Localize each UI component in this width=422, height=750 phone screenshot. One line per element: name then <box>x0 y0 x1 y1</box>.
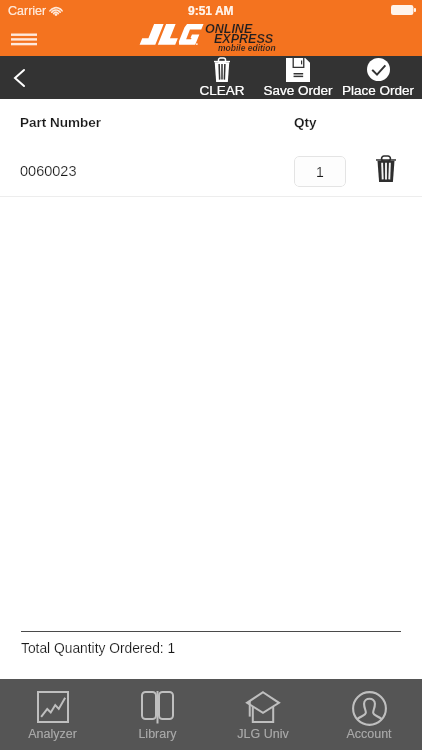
button[interactable]: 0060023 <box>0 146 422 196</box>
staticText: Carrier <box>8 4 47 18</box>
button[interactable]: JLG Univ <box>210 679 316 750</box>
staticText: 0060023 <box>20 163 77 179</box>
staticText: Total Quantity Ordered: 1 <box>21 641 176 656</box>
button[interactable]: Menu <box>4 23 44 51</box>
staticText: Save Order <box>262 83 334 98</box>
staticText: EXPRESS <box>214 32 274 46</box>
button[interactable]: Place Order <box>334 56 422 99</box>
button[interactable]: Save Order <box>262 56 334 99</box>
button[interactable]: Analyzer <box>0 679 105 750</box>
button[interactable]: Back <box>0 56 44 99</box>
staticText: Analyzer <box>0 727 105 741</box>
button[interactable]: Delete item <box>368 151 404 187</box>
staticText: ONLINE <box>205 22 253 36</box>
staticText: Library <box>105 727 210 741</box>
staticText: Place Order <box>334 83 422 98</box>
staticText: Account <box>316 727 422 741</box>
button[interactable]: 1 <box>294 156 346 187</box>
staticText: 9:51 AM <box>188 4 234 17</box>
button[interactable]: CLEAR <box>182 56 262 99</box>
staticText: Part Number <box>20 115 102 130</box>
button[interactable]: Library <box>105 679 210 750</box>
staticText: CLEAR <box>182 83 262 98</box>
button[interactable]: Account <box>316 679 422 750</box>
staticText: 1 <box>316 164 324 180</box>
staticText: JLG Univ <box>210 727 316 741</box>
staticText: Qty <box>294 115 317 130</box>
staticText: mobile edition <box>218 43 276 52</box>
